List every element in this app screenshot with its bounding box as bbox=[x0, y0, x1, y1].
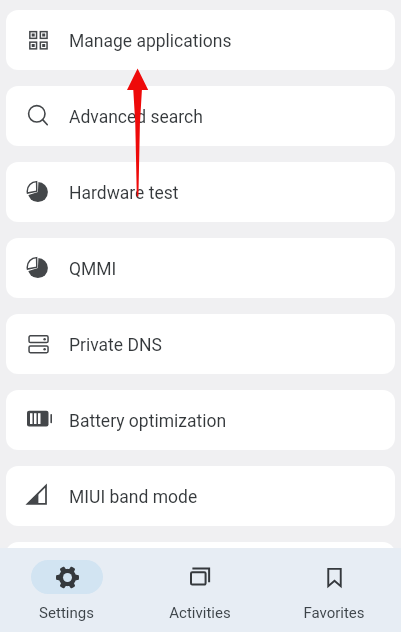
button[interactable]: Manage applications bbox=[6, 10, 395, 70]
staticText: Hardware test bbox=[69, 183, 179, 204]
other: Activities bbox=[189, 566, 212, 589]
other: Settings bbox=[56, 566, 79, 589]
button[interactable]: Favorites bbox=[267, 548, 401, 632]
staticText: MIUI band mode bbox=[69, 487, 198, 508]
staticText: Private DNS bbox=[69, 335, 162, 356]
button[interactable]: Battery optimization bbox=[6, 390, 395, 450]
staticText: Favorites bbox=[303, 604, 365, 622]
button[interactable]: Hardware test bbox=[6, 162, 395, 222]
staticText: Manage applications bbox=[69, 31, 232, 52]
other: Favorites bbox=[323, 566, 346, 589]
staticText: Advanced search bbox=[69, 107, 203, 128]
button[interactable]: Settings bbox=[0, 548, 133, 632]
button[interactable]: QMMI bbox=[6, 238, 395, 298]
staticText: Activities bbox=[169, 604, 231, 622]
staticText: QMMI bbox=[69, 259, 117, 280]
button[interactable] bbox=[6, 542, 395, 602]
staticText: Settings bbox=[39, 604, 94, 622]
button[interactable]: Private DNS bbox=[6, 314, 395, 374]
button[interactable]: MIUI band mode bbox=[6, 466, 395, 526]
staticText: Battery optimization bbox=[69, 411, 227, 432]
button[interactable]: Activities bbox=[133, 548, 267, 632]
button[interactable]: Advanced search bbox=[6, 86, 395, 146]
